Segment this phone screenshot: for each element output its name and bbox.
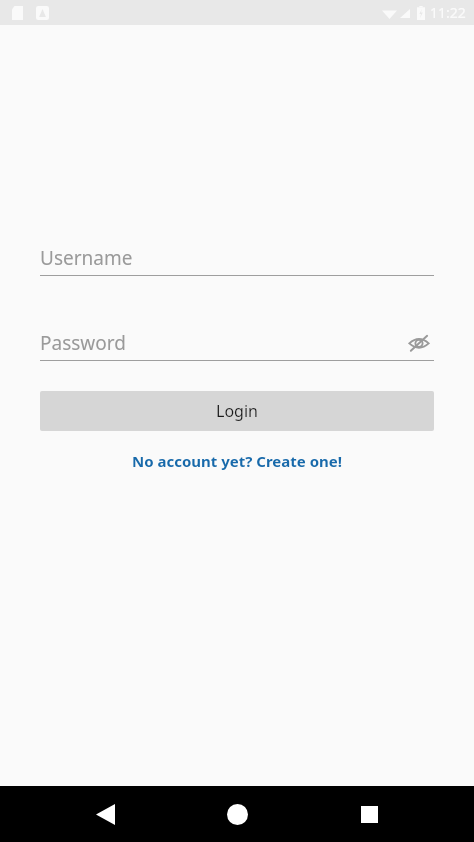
button[interactable]: Login	[40, 391, 434, 431]
button[interactable]: Show password	[404, 328, 434, 358]
button[interactable]: Home	[216, 793, 258, 835]
staticText: Login	[216, 400, 258, 422]
staticText: No account yet? Create one!	[132, 451, 342, 471]
staticText: Username	[40, 245, 133, 271]
staticText: Password	[40, 330, 126, 356]
button[interactable]: No account yet? Create one!	[40, 448, 434, 474]
button[interactable]: Back	[85, 794, 125, 834]
button[interactable]: Recent apps	[349, 794, 389, 834]
button[interactable]: Password	[40, 325, 434, 361]
staticText: 11:22	[430, 3, 466, 22]
button[interactable]: Username	[40, 240, 434, 276]
